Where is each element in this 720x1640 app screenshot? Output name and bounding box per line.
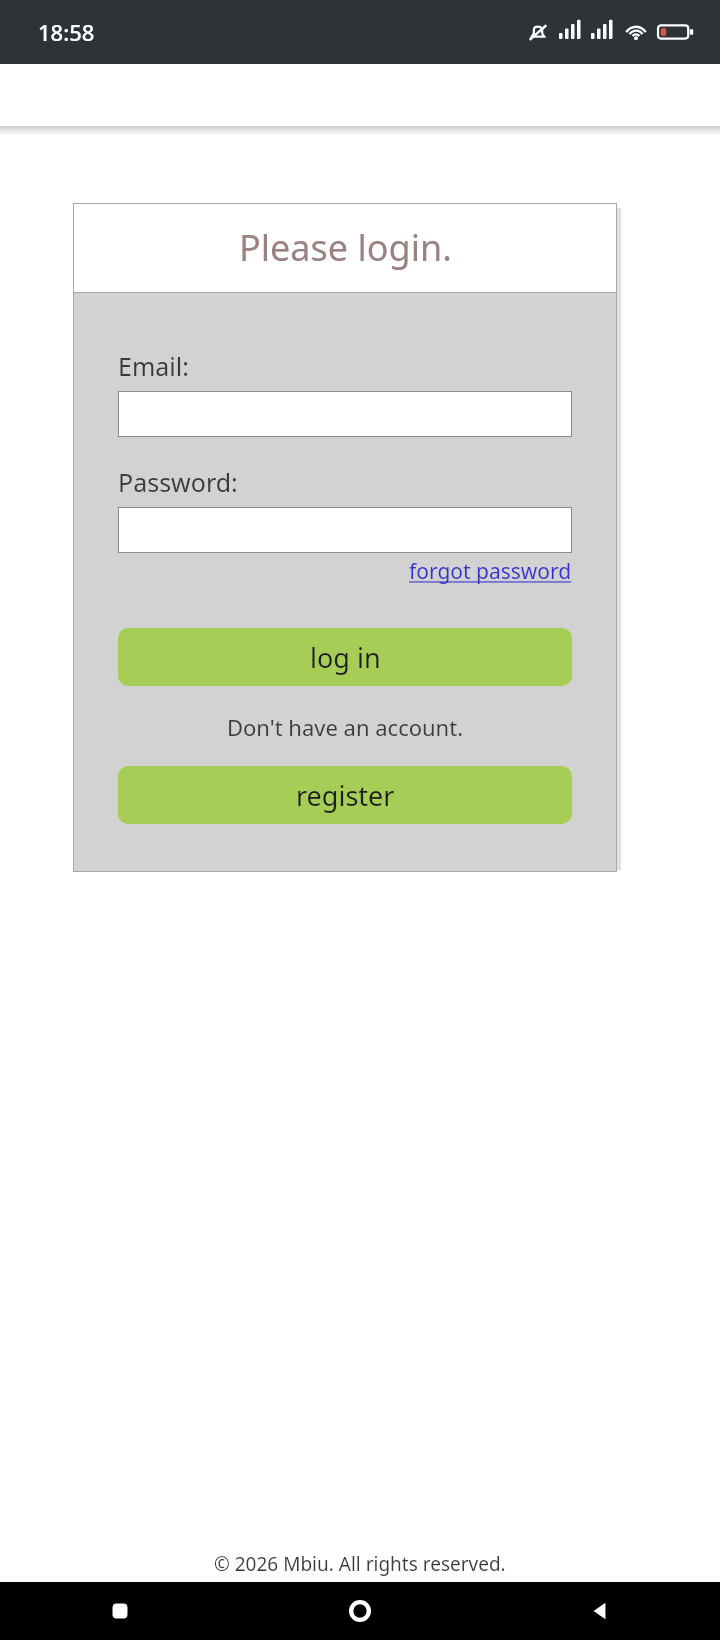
staticText: register bbox=[296, 777, 395, 814]
staticText: log in bbox=[310, 639, 381, 676]
button[interactable]: Back bbox=[480, 1582, 720, 1640]
button[interactable]: forgot password bbox=[409, 557, 572, 586]
staticText: © 2026 Mbiu. All rights reserved. bbox=[214, 1551, 506, 1577]
button[interactable]: log in bbox=[118, 628, 572, 686]
staticText: Email: bbox=[118, 349, 189, 383]
staticText: Please login. bbox=[239, 223, 452, 272]
staticText: Password: bbox=[118, 465, 238, 499]
button[interactable]: Home bbox=[240, 1582, 480, 1640]
button[interactable]: register bbox=[118, 766, 572, 824]
button[interactable] bbox=[118, 507, 572, 553]
button[interactable]: Recent apps bbox=[0, 1582, 240, 1640]
staticText: Don't have an account. bbox=[118, 712, 572, 742]
staticText: 18:58 bbox=[38, 17, 95, 47]
button[interactable] bbox=[118, 391, 572, 437]
